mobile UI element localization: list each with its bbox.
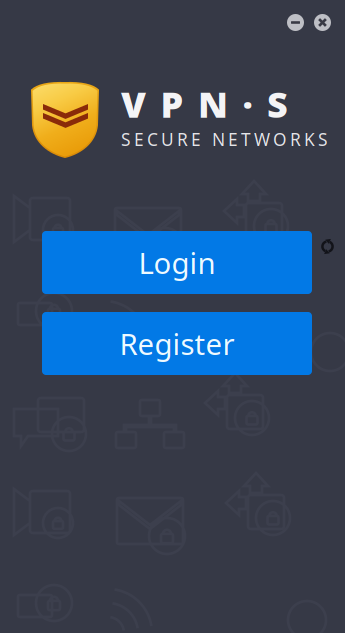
button[interactable]: Login [42,231,312,294]
button[interactable]: Minimize [287,14,304,31]
staticText: VPN·S [121,80,288,128]
staticText: Register [119,324,234,363]
button[interactable]: Refresh [319,238,336,255]
staticText: Login [138,243,215,282]
staticText: SECURE NETWORKS [121,128,328,151]
button[interactable]: Register [42,312,312,375]
button[interactable]: Close [314,14,331,31]
